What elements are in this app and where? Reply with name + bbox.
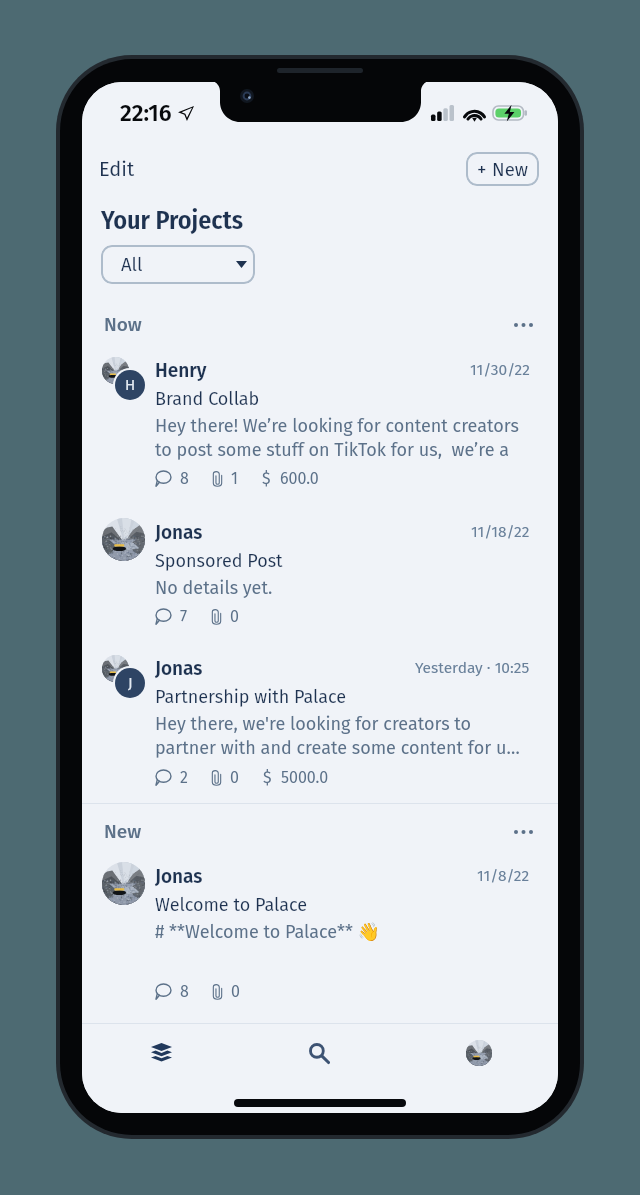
button[interactable]: Projects [82,1024,240,1082]
staticText: $ [263,768,272,787]
staticText: 8 [180,982,189,1001]
button[interactable]: J [82,657,558,787]
button[interactable]: More options [509,315,538,335]
staticText: Now [104,313,509,336]
staticText: Jonas [155,657,415,680]
staticText: 5000.0 [281,768,329,787]
staticText: 0 [230,607,239,626]
button[interactable]: H [82,359,558,488]
staticText: + [477,158,487,181]
staticText: Henry [155,359,470,382]
staticText: New [104,820,509,843]
staticText: Partnership with Palace [155,686,347,708]
staticText: Hey there! We’re looking for content cre… [155,415,530,461]
staticText: Sponsored Post [155,550,283,572]
staticText: # **Welcome to Palace** 👋 [155,921,380,943]
button[interactable]: Search [240,1024,399,1082]
staticText: All [121,254,143,276]
button[interactable]: Jonas [82,865,558,1001]
button[interactable]: All [101,245,255,284]
button[interactable]: Jonas [82,521,558,626]
staticText: J [128,674,133,692]
staticText: New [492,159,528,181]
staticText: 11/30/22 [470,361,530,380]
staticText: 0 [230,768,239,787]
staticText: 11/8/22 [477,867,530,886]
staticText: Yesterday · 10:25 [415,659,530,678]
staticText: Your Projects [101,205,243,236]
staticText: 7 [180,607,188,626]
staticText: Jonas [155,521,471,544]
staticText: 2 [180,768,188,787]
staticText: Brand Collab [155,388,260,410]
staticText: 8 [180,469,189,488]
staticText: 1 [231,469,238,488]
staticText: Jonas [155,865,477,888]
button[interactable]: Edit [94,153,140,185]
button[interactable]: + [466,152,539,186]
button[interactable]: More options [509,822,538,842]
staticText: Hey there, we're looking for creators to… [155,713,530,759]
staticText: No details yet. [155,577,273,599]
staticText: 22:16 [120,99,172,127]
button[interactable]: Profile [399,1024,558,1082]
staticText: 0 [231,982,240,1001]
staticText: Welcome to Palace [155,894,308,916]
staticText: 11/18/22 [471,523,530,542]
staticText: 600.0 [280,469,319,488]
staticText: $ [262,469,271,488]
staticText: Edit [99,157,135,181]
staticText: H [125,376,136,394]
